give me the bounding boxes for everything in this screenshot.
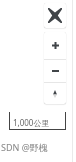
staticText: SDN @野槐	[1, 141, 48, 153]
button[interactable]: Enter fullscreen	[44, 3, 66, 28]
button[interactable]: Compass, reset map orientation north	[44, 83, 66, 104]
staticText: 1,000公里	[13, 117, 50, 128]
button[interactable]: Zoom out	[44, 60, 66, 82]
button[interactable]: Zoom in	[44, 32, 66, 59]
